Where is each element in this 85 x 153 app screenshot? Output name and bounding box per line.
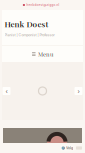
staticText: henkdoest@ziggo.nl bbox=[26, 3, 59, 7]
button[interactable]: Previous slide bbox=[2, 87, 10, 95]
staticText: Henk Doest bbox=[5, 18, 49, 29]
staticText: › bbox=[77, 87, 79, 95]
button[interactable]: Menu bbox=[2, 46, 83, 63]
button[interactable]: Next slide bbox=[74, 87, 82, 95]
staticText: ‹ bbox=[5, 87, 7, 95]
button[interactable]: henkdoest@ziggo.nl bbox=[23, 3, 59, 7]
button[interactable]: W bbox=[60, 145, 74, 151]
staticText: Menu bbox=[38, 50, 53, 58]
staticText: W bbox=[62, 146, 65, 150]
staticText: Volg bbox=[66, 146, 73, 150]
staticText: Pianist | Componist | Professor bbox=[5, 33, 55, 37]
